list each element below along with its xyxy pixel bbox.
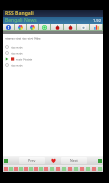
button[interactable]: Weather [77, 24, 89, 30]
button[interactable]: Prev [19, 157, 45, 164]
button[interactable]: Shortcut 2 [8, 165, 13, 172]
button[interactable]: Shortcut 8 [38, 165, 43, 172]
button[interactable]: খবর সংবাদ [5, 44, 103, 50]
button[interactable]: Shortcut 16 [85, 165, 91, 172]
staticText: Next [70, 158, 78, 163]
staticText: RSS Bangali [5, 10, 34, 17]
staticText: খবর সংবাদ [11, 63, 23, 68]
button[interactable]: Record [64, 24, 76, 30]
button[interactable]: Shortcut 5 [23, 165, 28, 172]
staticText: আজকের তাজা খবর বাংলা নিউজ [5, 36, 41, 41]
staticText: খবর সংবাদ [11, 51, 23, 56]
button[interactable]: খবর সংবাদ [5, 62, 103, 68]
button[interactable]: Shortcut 18 [97, 165, 103, 172]
button[interactable]: Shortcut 11 [55, 165, 61, 172]
staticText: Bengali News [5, 17, 37, 24]
button[interactable]: Shortcut 13 [67, 165, 73, 172]
button[interactable]: Chart [90, 24, 102, 30]
button[interactable]: Shortcut 3 [13, 165, 18, 172]
button[interactable]: Share [39, 24, 50, 30]
button[interactable]: Home [3, 24, 14, 30]
staticText: খবর সংবাদ [11, 45, 23, 50]
button[interactable]: Next [61, 157, 87, 164]
button[interactable]: Shortcut 12 [61, 165, 67, 172]
staticText: সংবাদ শিরোনাম [16, 57, 33, 62]
button[interactable]: Shortcut 9 [43, 165, 49, 172]
button[interactable]: Shortcut 10 [49, 165, 55, 172]
staticText: Prev [28, 158, 36, 163]
button[interactable]: খবর সংবাদ [5, 50, 103, 56]
button[interactable]: Shortcut 17 [91, 165, 97, 172]
staticText: 1.92 [93, 18, 101, 23]
button[interactable]: Shortcut 4 [18, 165, 23, 172]
button[interactable]: Shortcut 14 [73, 165, 79, 172]
button[interactable]: Shortcut 1 [3, 165, 8, 172]
button[interactable]: Alert [51, 24, 63, 30]
button[interactable]: Palette [27, 24, 38, 30]
button[interactable]: Colors [15, 24, 26, 30]
button[interactable]: Favourite [50, 157, 57, 164]
button[interactable]: Shortcut 15 [79, 165, 85, 172]
button[interactable]: Shortcut 6 [28, 165, 33, 172]
button[interactable]: সংবাদ শিরোনাম [5, 56, 103, 62]
button[interactable]: Shortcut 7 [33, 165, 38, 172]
